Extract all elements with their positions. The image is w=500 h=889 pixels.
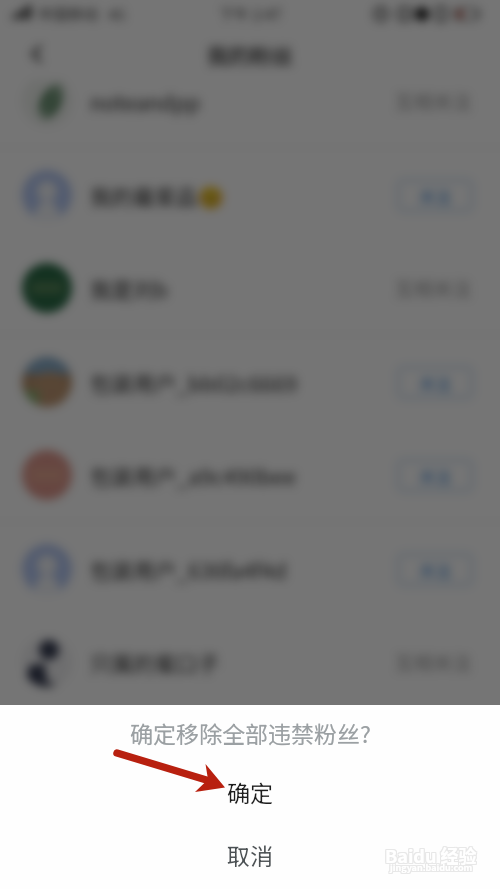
staticText: 互相关注 bbox=[395, 274, 472, 302]
staticText: 确定 bbox=[227, 775, 273, 808]
staticText: jingyan.baidu.com bbox=[389, 860, 472, 873]
staticText: 包装用户_bb02c6669 bbox=[90, 367, 298, 398]
staticText: 确定移除全部违禁粉丝? bbox=[130, 716, 371, 749]
staticText: jingyan.baidu.com bbox=[391, 861, 474, 874]
staticText: Baidu 经验 bbox=[385, 843, 477, 869]
staticText: 关注 bbox=[419, 371, 452, 394]
staticText: Baidu 经验 bbox=[384, 841, 476, 867]
staticText: 我是刘b bbox=[90, 273, 168, 304]
button[interactable]: 关注 bbox=[398, 367, 472, 398]
staticText: 4G bbox=[108, 4, 126, 24]
staticText: Baidu 经验 bbox=[386, 843, 478, 869]
staticText: 互相关注 bbox=[395, 648, 472, 676]
staticText: Baidu 经验 bbox=[384, 843, 476, 869]
staticText: jingyan.baidu.com bbox=[390, 861, 473, 874]
staticText: Baidu 经验 bbox=[385, 841, 477, 867]
staticText: 取消 bbox=[227, 838, 273, 871]
staticText: Baidu 经验 bbox=[385, 842, 477, 868]
button[interactable]: 确定 bbox=[0, 760, 500, 822]
staticText: jingyan.baidu.com bbox=[389, 861, 472, 874]
staticText: Baidu 经验 bbox=[386, 841, 478, 867]
staticText: Baidu 经验 bbox=[386, 842, 478, 868]
button[interactable]: 取消 bbox=[0, 822, 500, 886]
staticText: 互相关注 bbox=[395, 87, 472, 115]
button[interactable]: 关注 bbox=[398, 180, 472, 211]
staticText: 关注 bbox=[419, 464, 452, 487]
staticText: jingyan.baidu.com bbox=[391, 860, 474, 873]
button[interactable]: 返回 bbox=[13, 30, 61, 78]
staticText: jingyan.baidu.com bbox=[390, 860, 473, 873]
staticText: 关注 bbox=[419, 558, 452, 581]
staticText: 关注 bbox=[419, 184, 452, 207]
staticText: 中国移动 bbox=[38, 3, 99, 25]
staticText: 我的粉丝 bbox=[207, 39, 294, 70]
staticText: 包装用户_636fa4f4d bbox=[90, 554, 287, 585]
staticText: 只属的蜜口子 bbox=[90, 647, 220, 678]
button[interactable]: 关注 bbox=[398, 554, 472, 585]
staticText: Baidu 经验 bbox=[384, 842, 476, 868]
staticText: jingyan.baidu.com bbox=[391, 862, 474, 875]
button[interactable]: 关注 bbox=[398, 460, 472, 491]
staticText: 包装用户_a9c490bee bbox=[90, 460, 296, 491]
staticText: noteandpp bbox=[90, 86, 201, 117]
staticText: jingyan.baidu.com bbox=[389, 862, 472, 875]
staticText: jingyan.baidu.com bbox=[390, 862, 473, 875]
staticText: 下午 2:47 bbox=[219, 3, 282, 25]
staticText: 我的最爱品😊 bbox=[90, 180, 225, 211]
